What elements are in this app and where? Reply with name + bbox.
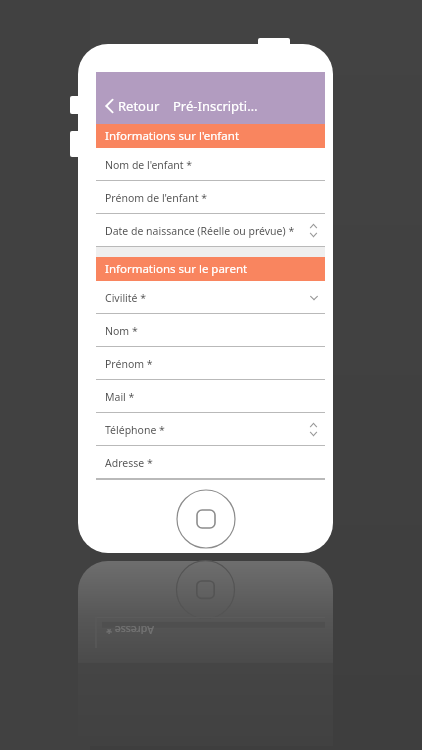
button[interactable]: Nom de l'enfant * <box>96 148 325 181</box>
button[interactable]: Retour <box>103 95 162 117</box>
staticText: Date de naissance (Réelle ou prévue) * <box>105 224 309 238</box>
staticText: Civilité * <box>105 291 310 305</box>
button[interactable]: Civilité * <box>96 281 325 314</box>
staticText: Informations sur le parent <box>105 261 248 277</box>
staticText: Informations sur l'enfant <box>105 128 240 144</box>
staticText: Pré-Inscripti… <box>173 97 258 115</box>
button[interactable]: Adresse * <box>96 446 325 479</box>
staticText: Mail * <box>105 390 318 404</box>
button[interactable]: Date de naissance (Réelle ou prévue) * <box>96 214 325 247</box>
staticText: Adresse * <box>106 623 154 637</box>
button[interactable]: Prénom * <box>96 347 325 380</box>
staticText: Prénom de l'enfant * <box>105 191 318 205</box>
button[interactable]: Téléphone * <box>96 413 325 446</box>
staticText: Retour <box>118 97 160 115</box>
button[interactable]: Home <box>176 489 236 549</box>
staticText: Adresse * <box>105 456 318 470</box>
staticText: Nom * <box>105 324 318 338</box>
button[interactable]: Nom * <box>96 314 325 347</box>
button[interactable]: Prénom de l'enfant * <box>96 181 325 214</box>
staticText: Prénom * <box>105 357 318 371</box>
staticText: Téléphone * <box>105 423 309 437</box>
staticText: Nom de l'enfant * <box>105 158 318 172</box>
button[interactable]: Mail * <box>96 380 325 413</box>
